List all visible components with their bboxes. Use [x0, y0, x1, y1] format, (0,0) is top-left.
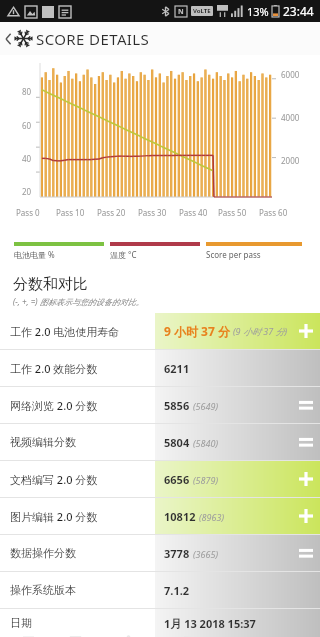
button[interactable]: 图片编辑 2.0 分数 [0, 498, 320, 534]
staticText: 日期 [10, 616, 32, 630]
staticText: 23:44 [283, 3, 314, 19]
staticText: 数据操作分数 [10, 546, 76, 560]
staticText: (3665) [193, 548, 219, 560]
button[interactable]: 工作 2.0 电池使用寿命 [0, 313, 320, 349]
staticText: 3778 [164, 546, 190, 561]
staticText: Pass 50 [218, 207, 247, 218]
staticText: 6211 [164, 361, 190, 376]
staticText: (5649) [193, 400, 219, 412]
button[interactable]: Back [0, 29, 37, 48]
staticText: 网络浏览 2.0 分数 [10, 398, 98, 413]
staticText: 4000 [281, 112, 300, 123]
staticText: Pass 10 [56, 207, 85, 218]
staticText: Pass 0 [16, 207, 40, 218]
staticText: 10812 [164, 509, 196, 524]
staticText: 6000 [281, 69, 300, 80]
staticText: 电池电量 % [14, 249, 55, 260]
button[interactable]: 视频编辑分数 [0, 424, 320, 460]
staticText: 视频编辑分数 [10, 435, 76, 449]
staticText: 分数和对比 [13, 275, 88, 294]
staticText: (-, +, =) 图标表示与您的设备的对比。 [13, 296, 144, 307]
staticText: SCORE DETAILS [36, 29, 150, 49]
button[interactable]: 日期 [0, 609, 320, 637]
staticText: 20 [22, 186, 32, 197]
staticText: 13% [247, 4, 269, 19]
staticText: 40 [22, 153, 32, 164]
staticText: 5856 [164, 398, 190, 413]
staticText: (9 小时 37 分) [233, 325, 288, 337]
staticText: 9 小时 37 分 [164, 323, 230, 339]
staticText: 工作 2.0 效能分数 [10, 361, 98, 376]
button[interactable]: 网络浏览 2.0 分数 [0, 387, 320, 423]
staticText: 文档编写 2.0 分数 [10, 472, 98, 487]
staticText: (5840) [193, 437, 219, 449]
staticText: 1月 13 2018 15:37 [164, 616, 256, 631]
staticText: 80 [22, 86, 32, 97]
staticText: (5879) [193, 474, 219, 486]
staticText: 6656 [164, 472, 190, 487]
staticText: N [178, 7, 184, 17]
button[interactable]: 工作 2.0 效能分数 [0, 350, 320, 386]
button[interactable]: 数据操作分数 [0, 535, 320, 571]
staticText: 5804 [164, 435, 190, 450]
staticText: 2000 [281, 155, 300, 166]
staticText: Score per pass [206, 249, 261, 260]
staticText: 图片编辑 2.0 分数 [10, 509, 98, 524]
staticText: 操作系统版本 [10, 583, 76, 597]
staticText: Pass 40 [179, 207, 208, 218]
staticText: 温度 °C [110, 249, 137, 260]
staticText: Pass 30 [138, 207, 167, 218]
staticText: (8963) [199, 511, 225, 523]
staticText: 7.1.2 [164, 583, 190, 598]
button[interactable]: 操作系统版本 [0, 572, 320, 608]
button[interactable]: 文档编写 2.0 分数 [0, 461, 320, 497]
staticText: 工作 2.0 电池使用寿命 [10, 324, 120, 339]
staticText: Pass 60 [259, 207, 288, 218]
staticText: VoLTE [193, 7, 211, 15]
staticText: Pass 20 [97, 207, 126, 218]
staticText: 60 [22, 120, 32, 131]
